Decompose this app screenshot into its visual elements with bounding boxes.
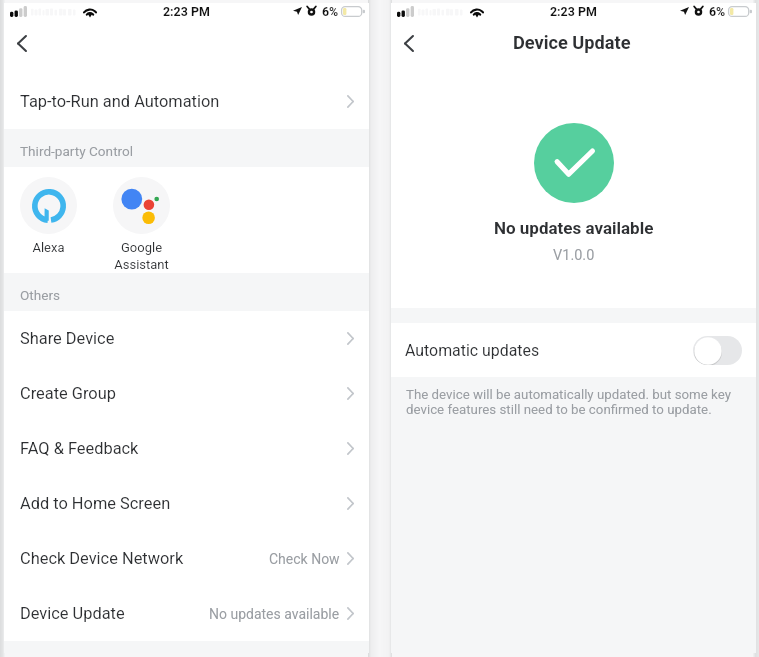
button[interactable]: Share Device [4,311,369,366]
staticText: No updates available [494,218,654,238]
staticText: Device Update [513,32,631,53]
staticText: Tap-to-Run and Automation [20,92,220,111]
staticText: FAQ & Feedback [20,439,139,458]
staticText: The device will be automatically updated… [406,387,750,417]
button[interactable]: Add to Home Screen [4,476,369,531]
button[interactable]: FAQ & Feedback [4,421,369,476]
staticText: Third-party Control [20,143,134,159]
button[interactable]: Back [387,23,431,63]
staticText: Create Group [20,384,116,403]
staticText: Alexa [32,240,65,255]
staticText: 2:23 PM [163,4,210,19]
staticText: 6% [709,4,726,19]
button[interactable]: Device Update [4,586,369,641]
button[interactable]: Automatic updates [391,323,756,377]
staticText: Share Device [20,329,115,348]
staticText: Check Now [269,551,340,567]
button[interactable]: Automatic updates toggle [693,336,742,365]
staticText: Device Update [20,604,125,623]
button[interactable]: Alexa [16,167,80,255]
button[interactable]: Back [0,19,44,67]
button[interactable]: Check Device Network [4,531,369,586]
staticText: V1.0.0 [553,247,595,264]
staticText: Check Device Network [20,549,184,568]
button[interactable]: Google Assistant [109,167,173,273]
staticText: 2:23 PM [550,4,597,19]
button[interactable]: Create Group [4,366,369,421]
staticText: Google Assistant [114,240,169,273]
staticText: 6% [322,4,339,19]
staticText: Others [20,287,61,303]
button[interactable]: Tap-to-Run and Automation [4,74,369,129]
staticText: No updates available [209,606,340,622]
staticText: Add to Home Screen [20,494,171,513]
staticText: Automatic updates [405,341,540,360]
